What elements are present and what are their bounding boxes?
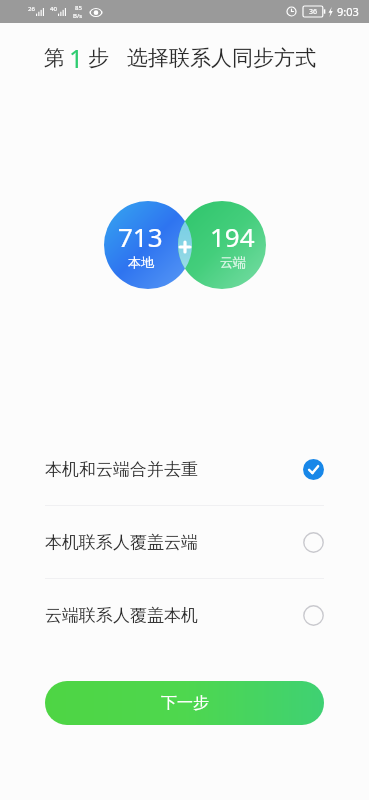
staticText: 下一步 <box>161 693 209 713</box>
staticText: 40 <box>50 5 57 13</box>
button[interactable]: 本机和云端合并去重 <box>0 433 369 505</box>
staticText: 713 <box>118 219 163 254</box>
staticText: 本机联系人覆盖云端 <box>45 532 198 553</box>
staticText: 36 <box>309 7 318 17</box>
staticText: B/s <box>73 12 83 20</box>
button[interactable]: 云端联系人覆盖本机 <box>0 579 369 651</box>
staticText: 9:03 <box>337 4 359 19</box>
staticText: 云端 <box>220 254 246 270</box>
staticText: 第 <box>44 45 65 71</box>
staticText: 1 <box>69 41 84 75</box>
staticText: 26 <box>28 5 35 13</box>
staticText: 云端联系人覆盖本机 <box>45 605 198 626</box>
staticText: 本机和云端合并去重 <box>45 459 198 480</box>
button[interactable]: 本机联系人覆盖云端 <box>0 506 369 578</box>
button[interactable]: 下一步 <box>45 681 324 725</box>
staticText: 194 <box>210 219 255 254</box>
staticText: 选择联系人同步方式 <box>127 45 316 71</box>
staticText: 85 <box>75 4 82 12</box>
staticText: 步 <box>88 45 109 71</box>
staticText: 本地 <box>128 254 154 270</box>
